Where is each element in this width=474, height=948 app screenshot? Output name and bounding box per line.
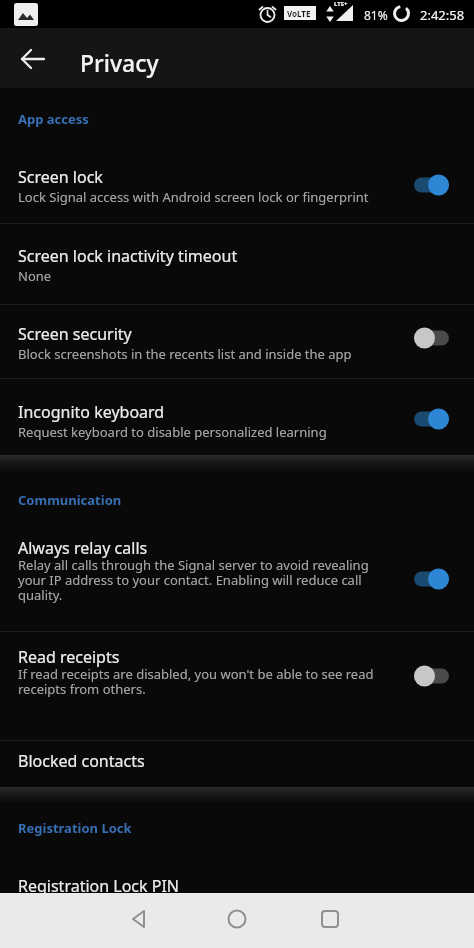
staticText: Registration Lock [18,819,132,837]
staticText: Blocked contacts [18,750,145,772]
staticText: Always relay calls [18,537,148,559]
button[interactable] [316,905,344,933]
button[interactable] [0,386,474,455]
staticText: Block screenshots in the recents list an… [18,345,352,363]
staticText: App access [18,110,89,128]
staticText: Relay all calls through the Signal serve… [18,556,369,604]
staticText: Request keyboard to disable personalized… [18,423,327,441]
staticText: None [18,267,52,285]
staticText: 81% [364,7,388,23]
staticText: Communication [18,491,122,509]
staticText: Incognito keyboard [18,401,165,423]
button[interactable] [0,308,474,385]
staticText: Lock Signal access with Android screen l… [18,188,369,206]
button[interactable] [125,905,153,933]
button[interactable] [0,741,474,787]
button[interactable] [0,632,474,740]
staticText: 2:42:58 [420,6,465,24]
staticText: Read receipts [18,646,120,668]
staticText: Screen security [18,323,132,345]
button[interactable] [0,848,474,893]
staticText: LTE+ [334,0,348,8]
button[interactable] [0,229,474,307]
staticText: VoLTE [287,8,311,19]
button[interactable] [223,905,251,933]
staticText: Screen lock [18,166,103,188]
staticText: Privacy [80,47,159,78]
button[interactable] [0,528,474,631]
button[interactable] [20,46,46,72]
staticText: Screen lock inactivity timeout [18,245,238,267]
staticText: Registration Lock PIN [18,875,179,897]
staticText: If read receipts are disabled, you won't… [18,665,374,698]
button[interactable] [0,140,474,228]
